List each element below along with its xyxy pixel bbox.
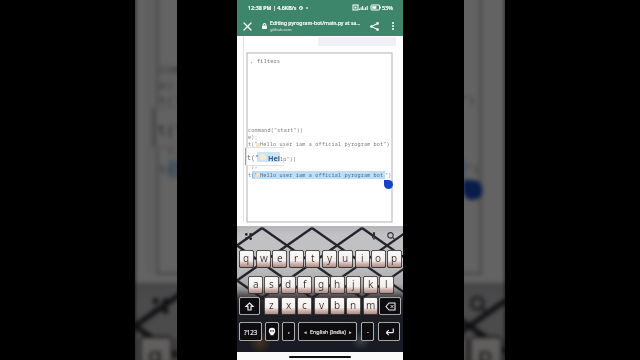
- button[interactable]: Enter: [378, 322, 400, 341]
- staticText: q: [148, 338, 164, 360]
- button[interactable]: o: [371, 250, 386, 268]
- button[interactable]: k: [363, 276, 378, 294]
- staticText: w: [260, 251, 268, 265]
- staticText: y: [336, 338, 349, 360]
- staticText: Hello user iam a official pyrogram bot"): [186, 93, 476, 109]
- staticText: v: [319, 298, 325, 312]
- button[interactable]: o: [434, 336, 467, 360]
- button[interactable]: g: [314, 276, 329, 294]
- staticText: i: [361, 251, 364, 265]
- staticText: l: [385, 277, 388, 291]
- button[interactable]: j: [346, 276, 361, 294]
- staticText: lp")): [280, 156, 297, 163]
- staticText: '),: [159, 111, 182, 126]
- button[interactable]: t: [305, 250, 320, 268]
- button[interactable]: q: [239, 250, 254, 268]
- staticText: t: [300, 338, 309, 360]
- staticText: z: [269, 298, 274, 312]
- button[interactable]: r: [251, 336, 284, 360]
- staticText: s: [269, 277, 274, 291]
- button[interactable]: y: [322, 250, 337, 268]
- button[interactable]: Keyboard menu: [242, 230, 255, 243]
- staticText: t: [311, 251, 315, 265]
- button[interactable]: h: [330, 276, 345, 294]
- button[interactable]: p: [469, 336, 503, 360]
- button[interactable]: r: [289, 250, 304, 268]
- staticText: 53%: [382, 4, 393, 11]
- staticText: ▸: [349, 329, 352, 335]
- staticText: Hello user iam a official pyrogram bot"): [260, 141, 390, 148]
- button[interactable]: Emoji: [265, 322, 279, 341]
- button[interactable]: w: [256, 250, 271, 268]
- button[interactable]: u: [360, 336, 393, 360]
- button[interactable]: b: [330, 297, 345, 315]
- button[interactable]: More options: [386, 19, 400, 33]
- staticText: 12:38 PM | 4.6KB/s: [248, 4, 297, 11]
- button[interactable]: f: [297, 276, 312, 294]
- staticText: p: [478, 338, 494, 360]
- staticText: t(": [159, 93, 182, 109]
- button[interactable]: c: [297, 297, 312, 315]
- staticText: '),: [248, 149, 258, 156]
- staticText: r: [294, 251, 299, 265]
- button[interactable]: x: [281, 297, 296, 315]
- button[interactable]: Backspace: [379, 297, 401, 315]
- staticText: '),: [248, 163, 258, 170]
- button[interactable]: u: [338, 250, 353, 268]
- button[interactable]: d: [281, 276, 296, 294]
- button[interactable]: Settings: [385, 230, 397, 242]
- staticText: Hel: [268, 153, 280, 163]
- staticText: Editing pyrogram-bot/main.py at sa…: [270, 19, 361, 26]
- button[interactable]: Shift: [239, 297, 260, 315]
- button[interactable]: v: [314, 297, 329, 315]
- staticText: , filters: [250, 57, 281, 65]
- staticText: u: [369, 338, 385, 360]
- staticText: d: [285, 277, 292, 291]
- button[interactable]: p: [387, 250, 402, 268]
- button[interactable]: z: [264, 297, 279, 315]
- button[interactable]: e: [213, 336, 246, 360]
- button[interactable]: y: [324, 336, 358, 360]
- button[interactable]: i: [398, 336, 431, 360]
- button[interactable]: s: [264, 276, 279, 294]
- button[interactable]: Close: [239, 18, 255, 34]
- button[interactable]: i: [355, 250, 370, 268]
- staticText: "): [385, 172, 392, 179]
- button[interactable]: Period: [361, 322, 374, 341]
- staticText: command("start")): [248, 127, 304, 134]
- staticText: e: [277, 251, 283, 265]
- staticText: h: [334, 277, 341, 291]
- button[interactable]: Voice input: [368, 230, 380, 242]
- button[interactable]: Settings: [465, 291, 492, 318]
- staticText: t(": [247, 153, 259, 162]
- staticText: o: [375, 251, 382, 265]
- staticText: .: [367, 326, 369, 336]
- button[interactable]: l: [379, 276, 394, 294]
- staticText: y: [327, 251, 333, 265]
- staticText: e):: [159, 77, 182, 93]
- staticText: n: [350, 298, 357, 312]
- button[interactable]: Share: [366, 18, 382, 34]
- button[interactable]: Keyboard menu: [146, 291, 175, 320]
- button[interactable]: m: [363, 297, 378, 315]
- button[interactable]: n: [346, 297, 361, 315]
- staticText: ,: [288, 326, 290, 336]
- button[interactable]: Comma: [282, 322, 295, 341]
- button[interactable]: Space: [298, 322, 357, 341]
- staticText: u: [342, 251, 349, 265]
- staticText: ?123: [244, 328, 258, 336]
- button[interactable]: Symbols: [239, 322, 262, 341]
- button[interactable]: a: [248, 276, 263, 294]
- staticText: a: [253, 277, 259, 291]
- button[interactable]: q: [139, 336, 173, 360]
- button[interactable]: t: [286, 336, 320, 360]
- button[interactable]: e: [272, 250, 287, 268]
- staticText: e):: [248, 134, 258, 141]
- staticText: t(": [248, 172, 258, 179]
